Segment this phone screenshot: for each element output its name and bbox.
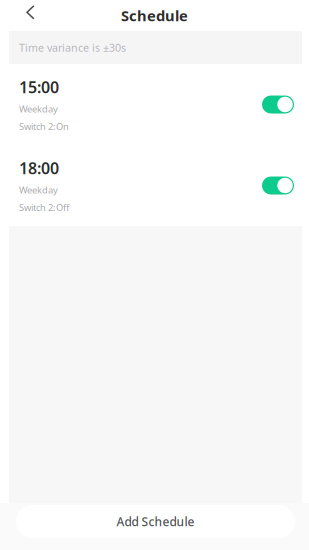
staticText: Weekday [19, 184, 58, 196]
staticText: Schedule [121, 6, 188, 25]
staticText: Switch 2:On [19, 120, 69, 132]
button[interactable]: Add Schedule [16, 505, 295, 538]
button[interactable]: Back [0, 0, 45, 31]
button[interactable]: 18:00 [0, 145, 309, 226]
staticText: Switch 2:Off [19, 201, 69, 213]
staticText: 18:00 [19, 157, 59, 179]
staticText: Weekday [19, 103, 58, 115]
staticText: 15:00 [19, 76, 59, 98]
staticText: Add Schedule [116, 513, 194, 529]
staticText: Time variance is ±30s [19, 40, 126, 55]
button[interactable]: 15:00 [0, 64, 309, 145]
